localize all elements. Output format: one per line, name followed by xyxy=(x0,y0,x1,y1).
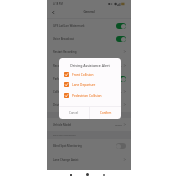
button[interactable]: Front Collision xyxy=(59,70,121,79)
button[interactable]: Parking Monitoring xyxy=(47,72,131,85)
staticText: Confirm xyxy=(100,111,112,115)
staticText: Recording Duration xyxy=(53,64,79,68)
staticText: Lane Departure xyxy=(72,83,96,87)
staticText: Pedestrian Collision xyxy=(72,94,102,98)
button[interactable]: Toggle xyxy=(116,76,126,82)
button[interactable]: Toggle xyxy=(116,36,126,42)
button[interactable]: Lane Change Assist xyxy=(47,153,131,166)
button[interactable]: Restart Recording xyxy=(47,45,131,58)
staticText: Restart Recording xyxy=(53,50,77,54)
staticText: Select xyxy=(115,123,122,126)
button[interactable]: Driving Assistance xyxy=(47,98,131,111)
button[interactable]: GPS Lat/Lon Watermark xyxy=(47,19,131,32)
staticText: Cancel xyxy=(69,111,79,115)
staticText: Driving Assistance xyxy=(53,103,77,107)
staticText: 4:18 PM xyxy=(53,2,63,6)
staticText: Collision Sensitivity xyxy=(53,90,79,94)
button[interactable]: Recording Duration xyxy=(47,59,131,72)
staticText: Vehicle Model xyxy=(53,123,72,127)
button[interactable]: Recents xyxy=(70,174,72,176)
button[interactable]: Vehicle Model xyxy=(47,118,131,131)
button[interactable]: Pedestrian Collision xyxy=(59,91,121,100)
button[interactable]: Toggle xyxy=(116,23,126,29)
button[interactable]: Voice Broadcast xyxy=(47,32,131,45)
staticText: Medium xyxy=(112,90,122,93)
button[interactable]: Blind Spot Monitoring xyxy=(47,139,131,152)
staticText: Lane Change Assist xyxy=(53,158,79,162)
staticText: General xyxy=(47,10,131,14)
button[interactable]: Back xyxy=(49,8,58,17)
staticText: Voice Broadcast xyxy=(53,37,74,41)
button[interactable]: Home xyxy=(86,173,89,176)
button[interactable]: Toggle xyxy=(116,143,126,149)
staticText: GPS Lat/Lon Watermark xyxy=(53,24,85,28)
staticText: Driving Assistance Alert xyxy=(59,63,121,68)
staticText: Parking Monitoring xyxy=(53,77,79,81)
button[interactable]: Lane Departure xyxy=(59,80,121,89)
staticText: Blind Spot Monitoring xyxy=(53,134,76,137)
staticText: 3 min xyxy=(115,64,122,67)
button[interactable]: Cancel xyxy=(59,107,89,119)
button[interactable]: Confirm xyxy=(90,107,121,119)
staticText: Front Collision xyxy=(72,73,94,77)
button[interactable]: Collision Sensitivity xyxy=(47,85,131,98)
staticText: Blind Spot Monitoring xyxy=(53,144,82,148)
